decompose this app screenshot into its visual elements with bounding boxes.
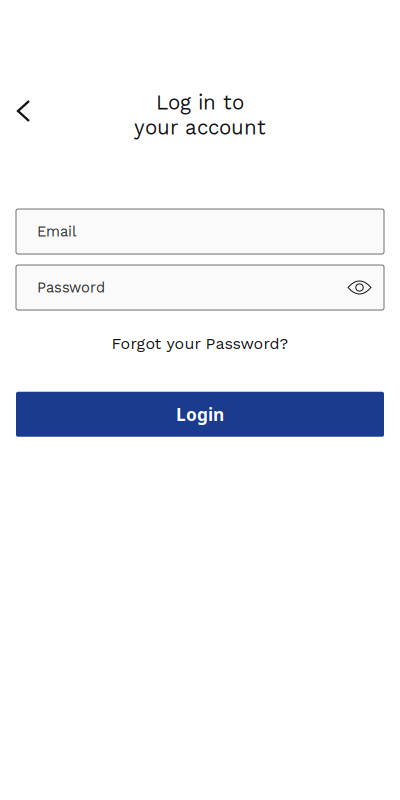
staticText: Email bbox=[37, 223, 76, 240]
button[interactable]: Forgot your Password? bbox=[91, 325, 308, 362]
staticText: Forgot your Password? bbox=[111, 334, 288, 353]
button[interactable]: Back bbox=[0, 92, 43, 138]
staticText: Login bbox=[176, 402, 224, 426]
staticText: Password bbox=[37, 279, 105, 296]
button[interactable]: Login bbox=[16, 392, 384, 437]
staticText: your account bbox=[134, 115, 266, 140]
staticText: Log in to bbox=[156, 90, 244, 114]
